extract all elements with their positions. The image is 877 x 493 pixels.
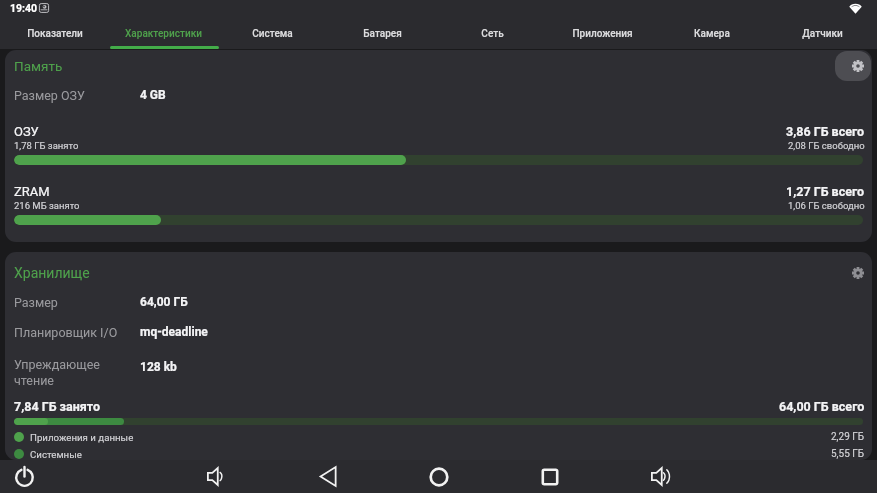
staticText: 1,78 ГБ занято [14, 140, 79, 151]
button[interactable]: Home [423, 460, 455, 493]
button[interactable]: Recents [534, 460, 566, 493]
staticText: Системные [30, 449, 82, 460]
staticText: Система [252, 28, 293, 40]
button[interactable]: Система [218, 21, 327, 49]
staticText: 4 GB [140, 88, 166, 102]
staticText: 1,27 ГБ всего [786, 184, 865, 199]
staticText: 1,06 ГБ свободно [788, 200, 865, 211]
staticText: ZRAM [14, 184, 50, 199]
button[interactable]: Volume up [644, 460, 677, 493]
button[interactable]: Сеть [437, 21, 547, 49]
button[interactable]: Показатели [0, 21, 109, 49]
staticText: Камера [694, 28, 730, 40]
staticText: 19:40 [10, 2, 38, 14]
staticText: 2,29 ГБ [831, 431, 865, 443]
staticText: Батарея [363, 28, 402, 40]
staticText: Планировщик I/O [14, 325, 118, 340]
staticText: Приложения и данные [30, 432, 134, 443]
button[interactable]: Характеристики [109, 21, 218, 49]
staticText: Приложения [572, 28, 633, 40]
staticText: Память [14, 58, 63, 74]
button[interactable]: Volume down [200, 460, 233, 493]
button[interactable]: Батарея [327, 21, 437, 49]
staticText: Хранилище [14, 265, 90, 281]
staticText: Характеристики [125, 28, 202, 40]
button[interactable]: Power [7, 460, 42, 493]
staticText: 64,00 ГБ всего [779, 399, 865, 414]
staticText: 5,55 ГБ [831, 448, 865, 460]
button[interactable]: Камера [657, 21, 767, 49]
staticText: 2,08 ГБ свободно [788, 140, 865, 151]
button[interactable]: Memory settings [835, 51, 871, 81]
staticText: ОЗУ [14, 124, 39, 139]
staticText: Сеть [481, 28, 504, 40]
button[interactable]: Датчики [767, 21, 877, 49]
button[interactable]: Back [312, 460, 345, 493]
staticText: 216 МБ занято [14, 200, 80, 211]
staticText: Размер [14, 295, 58, 310]
button[interactable]: Storage settings [846, 261, 869, 284]
staticText: 3,86 ГБ всего [786, 124, 865, 139]
staticText: Показатели [27, 28, 83, 40]
button[interactable]: Приложения [547, 21, 657, 49]
staticText: Датчики [802, 28, 843, 40]
staticText: Упреждающее чтение [14, 357, 100, 388]
staticText: Размер ОЗУ [14, 88, 85, 103]
staticText: 64,00 ГБ [140, 295, 188, 309]
staticText: 7,84 ГБ занято [14, 399, 101, 414]
staticText: 128 kb [140, 360, 177, 374]
staticText: mq-deadline [140, 325, 208, 339]
